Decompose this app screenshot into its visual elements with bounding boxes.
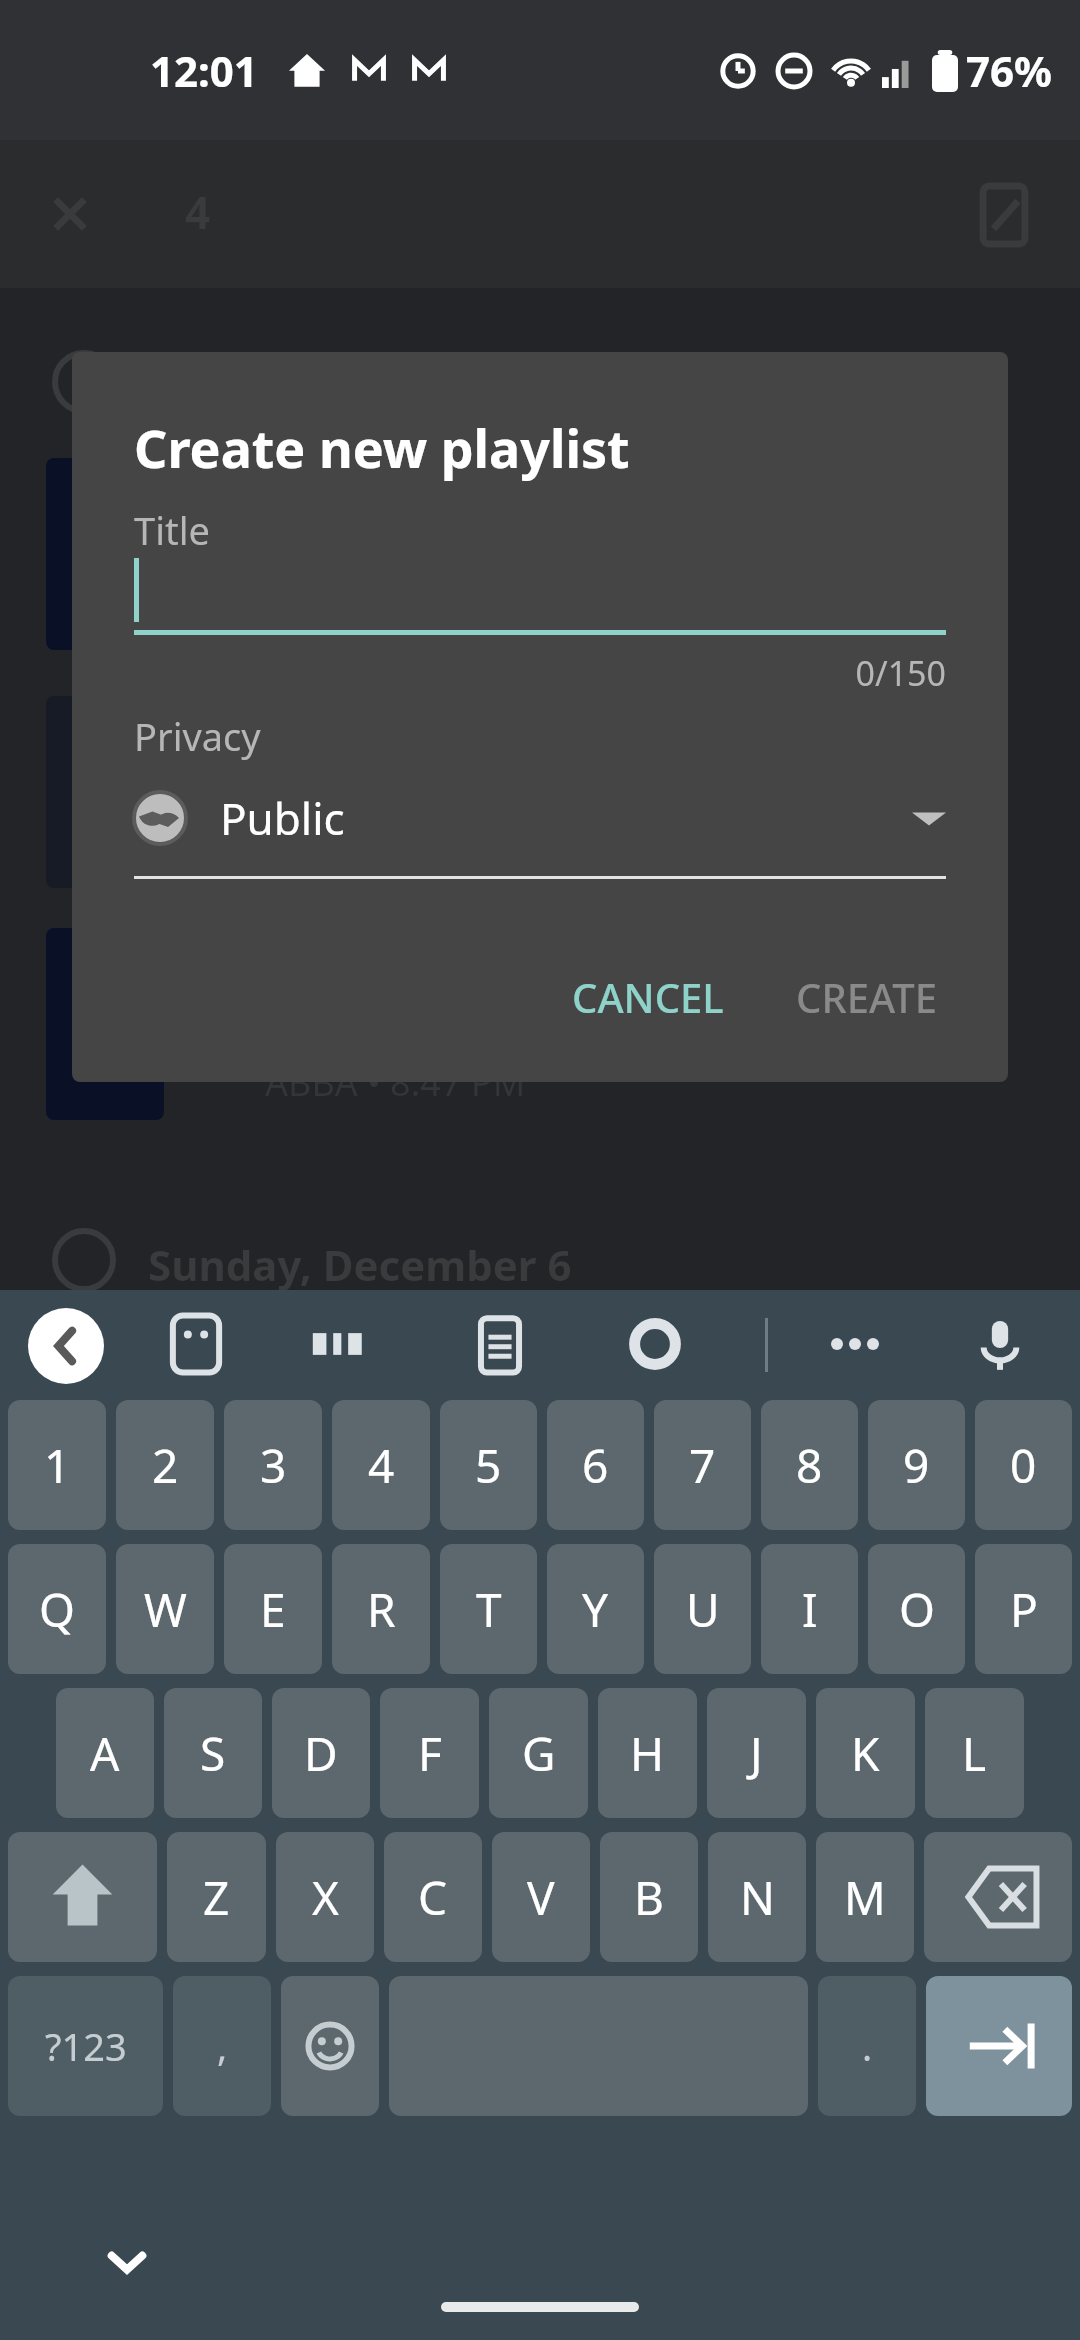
button[interactable]: Back [28,1308,104,1384]
button[interactable]: I [761,1544,858,1674]
staticText: U [686,1578,720,1641]
staticText: V [527,1866,555,1929]
staticText: 6 [582,1434,609,1497]
staticText: 2 [152,1434,179,1497]
staticText: S [200,1722,226,1785]
button[interactable]: 5 [440,1400,537,1530]
staticText: X [312,1866,339,1929]
button[interactable]: N [708,1832,806,1962]
staticText: Y [582,1578,609,1641]
button[interactable]: 0 [975,1400,1072,1530]
staticText: G [522,1722,556,1785]
staticText: L [962,1722,987,1785]
staticText: P [1010,1578,1038,1641]
button[interactable]: Clipboard [466,1310,534,1378]
button[interactable]: G [489,1688,588,1818]
button[interactable]: P [975,1544,1072,1674]
staticText: K [851,1722,880,1785]
button[interactable]: R [332,1544,430,1674]
button[interactable]: K [816,1688,915,1818]
staticText: F [418,1722,442,1785]
button[interactable]: Stickers [162,1310,230,1378]
button[interactable]: O [868,1544,965,1674]
staticText: H [630,1722,665,1785]
button[interactable]: S [164,1688,262,1818]
staticText: T [476,1578,502,1641]
staticText: E [260,1578,286,1641]
button[interactable]: 9 [868,1400,965,1530]
staticText: 4 [185,182,211,242]
staticText: O [899,1578,935,1641]
button[interactable]: 2 [116,1400,214,1530]
staticText: ABBA • 8:47 PM [265,1058,526,1107]
button[interactable]: Settings [621,1310,689,1378]
staticText: I [802,1578,818,1641]
button[interactable]: M [816,1832,914,1962]
button[interactable]: E [224,1544,322,1674]
button[interactable]: V [492,1832,590,1962]
staticText: 12:01 [150,42,258,99]
staticText: Sunday, December 6 [148,1236,572,1293]
button[interactable]: D [272,1688,370,1818]
button[interactable]: 1 [8,1400,106,1530]
button[interactable]: F [380,1688,479,1818]
button[interactable]: GIF [306,1310,374,1378]
staticText: Create new playlist [134,412,630,483]
button[interactable]: A [56,1688,154,1818]
button[interactable]: Z [167,1832,266,1962]
button[interactable]: 7 [654,1400,751,1530]
button[interactable]: C [384,1832,482,1962]
button[interactable]: Backspace [924,1832,1072,1962]
staticText: C [418,1866,448,1929]
staticText: , [217,2020,228,2072]
button[interactable]: More [821,1310,889,1378]
staticText: 7 [689,1434,716,1497]
staticText: CANCEL [572,970,724,1024]
staticText: Public [220,788,345,848]
button[interactable]: U [654,1544,751,1674]
button[interactable]: Hide keyboard [95,2230,159,2294]
staticText: CREATE [796,970,938,1024]
staticText: 9 [903,1434,930,1497]
button[interactable]: T [440,1544,537,1674]
button[interactable]: H [598,1688,697,1818]
button[interactable]: Public [134,770,946,866]
button[interactable]: Shift [8,1832,157,1962]
button[interactable]: J [707,1688,806,1818]
button[interactable]: 6 [547,1400,644,1530]
staticText: M [844,1866,886,1929]
button[interactable]: W [116,1544,214,1674]
button[interactable]: 3 [224,1400,322,1530]
button[interactable]: L [925,1688,1024,1818]
staticText: Q [39,1578,75,1641]
button[interactable]: Open [975,186,1033,244]
staticText: 76% [966,42,1052,99]
button[interactable]: Y [547,1544,644,1674]
button[interactable]: 4 [332,1400,430,1530]
button[interactable]: , [173,1976,271,2116]
staticText: ?123 [45,2020,127,2072]
button[interactable]: ?123 [8,1976,163,2116]
button[interactable]: CANCEL [550,952,746,1042]
staticText: . [862,2020,873,2072]
button[interactable]: Voice input [966,1310,1034,1378]
button[interactable]: Emoji [281,1976,379,2116]
staticText: A [90,1722,120,1785]
staticText: N [740,1866,775,1929]
button[interactable]: B [600,1832,698,1962]
button[interactable]: Enter [926,1976,1072,2116]
button[interactable]: Q [8,1544,106,1674]
button[interactable]: Close [40,184,100,244]
button[interactable]: CREATE [774,952,960,1042]
button[interactable]: 8 [761,1400,858,1530]
staticText: D [304,1722,338,1785]
staticText: Z [203,1866,230,1929]
staticText: 0/150 [134,650,946,696]
button[interactable]: X [276,1832,374,1962]
staticText: 8 [796,1434,823,1497]
staticText: 5 [475,1434,502,1497]
staticText: 3 [260,1434,287,1497]
button[interactable]: . [818,1976,916,2116]
